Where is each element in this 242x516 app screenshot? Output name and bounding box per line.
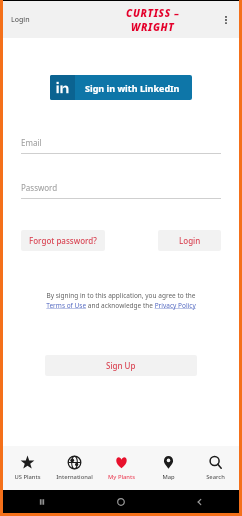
staticText: Login — [11, 15, 30, 25]
staticText: Map — [162, 473, 175, 481]
button[interactable]: Home — [81, 490, 160, 513]
staticText: Email — [21, 137, 42, 148]
staticText: Forgot password? — [29, 235, 97, 246]
staticText: CURTISS – — [126, 6, 180, 20]
staticText: International — [56, 473, 93, 481]
button[interactable]: More options — [213, 7, 239, 33]
staticText: US Plants — [14, 473, 41, 481]
staticText: My Plants — [108, 473, 135, 481]
staticText: WRIGHT — [131, 20, 175, 34]
button[interactable]: Sign Up — [45, 355, 197, 376]
button[interactable]: Map — [145, 446, 192, 490]
button[interactable]: US Plants — [3, 446, 51, 490]
staticText: Search — [206, 473, 225, 481]
button[interactable]: Password — [21, 182, 221, 199]
button[interactable]: Email — [21, 137, 221, 154]
button[interactable]: My Plants — [98, 446, 145, 490]
button[interactable]: Sign in with LinkedIn — [50, 75, 192, 100]
button[interactable]: Back — [160, 490, 239, 513]
staticText: Sign in with LinkedIn — [85, 82, 180, 94]
staticText: By signing in to this application, you a… — [46, 291, 196, 310]
button[interactable]: International — [51, 446, 98, 490]
button[interactable]: Search — [192, 446, 239, 490]
staticText: Password — [21, 182, 58, 193]
staticText: Login — [179, 235, 201, 246]
staticText: Sign Up — [106, 360, 136, 371]
button[interactable]: Forgot password? — [21, 230, 105, 251]
button[interactable]: Login — [158, 230, 221, 251]
button[interactable]: Recent apps — [3, 490, 81, 513]
